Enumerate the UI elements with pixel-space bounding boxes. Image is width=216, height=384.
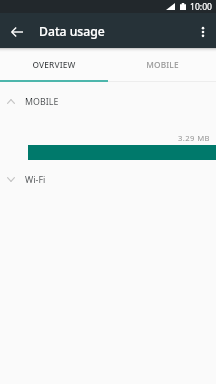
staticText: OVERVIEW bbox=[32, 59, 76, 70]
staticText: 3.29 MB bbox=[178, 133, 211, 143]
button[interactable]: OVERVIEW bbox=[0, 48, 108, 80]
button[interactable]: Wi-Fi bbox=[0, 166, 216, 193]
button[interactable]: MOBILE bbox=[0, 88, 216, 115]
button[interactable]: More options bbox=[193, 14, 213, 47]
staticText: MOBILE bbox=[146, 59, 179, 70]
staticText: Data usage bbox=[39, 23, 105, 40]
button[interactable]: MOBILE bbox=[108, 48, 216, 80]
button[interactable]: Navigate up bbox=[5, 14, 29, 47]
staticText: Wi-Fi bbox=[25, 174, 46, 186]
staticText: MOBILE bbox=[25, 96, 59, 108]
staticText: 10:00 bbox=[190, 1, 212, 13]
